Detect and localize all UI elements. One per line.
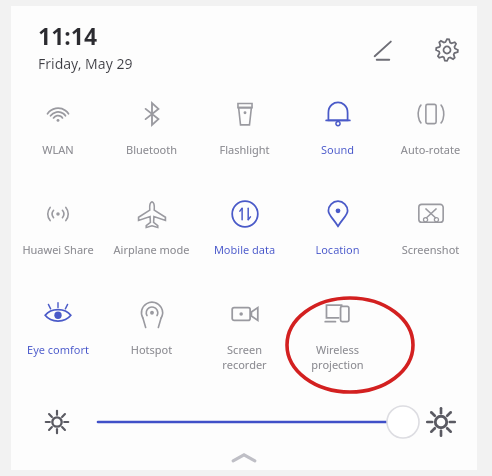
staticText: Airplane mode bbox=[106, 242, 197, 257]
button[interactable]: WLAN bbox=[11, 90, 105, 190]
button[interactable]: Flashlight bbox=[198, 90, 291, 190]
button[interactable]: Location bbox=[291, 190, 384, 290]
staticText: Screenshot bbox=[385, 242, 476, 257]
staticText: Bluetooth bbox=[106, 142, 197, 157]
button[interactable]: Huawei Share bbox=[11, 190, 105, 290]
button[interactable]: Brightness bbox=[81, 404, 371, 438]
button[interactable]: Collapse bbox=[216, 446, 272, 470]
button[interactable]: Wireless projection bbox=[291, 290, 384, 398]
staticText: Friday, May 29 bbox=[38, 54, 133, 73]
staticText: Hotspot bbox=[106, 342, 197, 357]
button[interactable]: Eye comfort bbox=[11, 290, 105, 398]
staticText: Screen recorder bbox=[199, 342, 290, 372]
staticText: Wireless projection bbox=[292, 342, 383, 372]
button[interactable]: Settings bbox=[425, 28, 469, 72]
staticText: Huawei Share bbox=[12, 242, 104, 257]
button[interactable]: Hotspot bbox=[105, 290, 198, 398]
staticText: Auto-rotate bbox=[385, 142, 476, 157]
staticText: Eye comfort bbox=[12, 342, 104, 357]
staticText: WLAN bbox=[12, 142, 104, 157]
button[interactable]: Screen recorder bbox=[198, 290, 291, 398]
staticText: Mobile data bbox=[199, 242, 290, 257]
staticText: Flashlight bbox=[199, 142, 290, 157]
staticText: Sound bbox=[292, 142, 383, 157]
button[interactable]: Airplane mode bbox=[105, 190, 198, 290]
staticText: 11:14 bbox=[38, 20, 98, 51]
staticText: Location bbox=[292, 242, 383, 257]
button[interactable]: Sound bbox=[291, 90, 384, 190]
button[interactable]: Bluetooth bbox=[105, 90, 198, 190]
button[interactable]: Screenshot bbox=[384, 190, 477, 290]
button[interactable]: Mobile data bbox=[198, 190, 291, 290]
button[interactable]: Auto-rotate bbox=[384, 90, 477, 190]
button[interactable]: Edit bbox=[361, 29, 405, 73]
